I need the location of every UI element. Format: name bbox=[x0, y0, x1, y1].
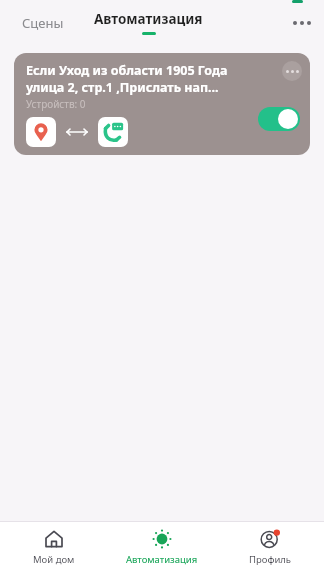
button[interactable]: Автоматизация bbox=[108, 522, 216, 572]
staticText: Автоматизация bbox=[126, 553, 198, 566]
button[interactable]: Если Уход из области 1905 Года улица 2, … bbox=[14, 53, 310, 155]
button[interactable]: Enable automation bbox=[258, 107, 300, 131]
button[interactable]: Автоматизация bbox=[88, 7, 209, 38]
button[interactable]: More options bbox=[286, 7, 318, 39]
staticText: Автоматизация bbox=[94, 10, 203, 28]
staticText: Сцены bbox=[22, 14, 64, 32]
button[interactable]: Профиль bbox=[216, 522, 324, 572]
staticText: Мой дом bbox=[33, 553, 75, 566]
button[interactable]: Мой дом bbox=[0, 522, 108, 572]
staticText: Устройств: 0 bbox=[26, 97, 86, 111]
button[interactable]: Automation options bbox=[282, 61, 302, 81]
button[interactable]: Сцены bbox=[10, 8, 76, 38]
staticText: Если Уход из области 1905 Года улица 2, … bbox=[26, 62, 262, 95]
staticText: Профиль bbox=[249, 553, 292, 566]
